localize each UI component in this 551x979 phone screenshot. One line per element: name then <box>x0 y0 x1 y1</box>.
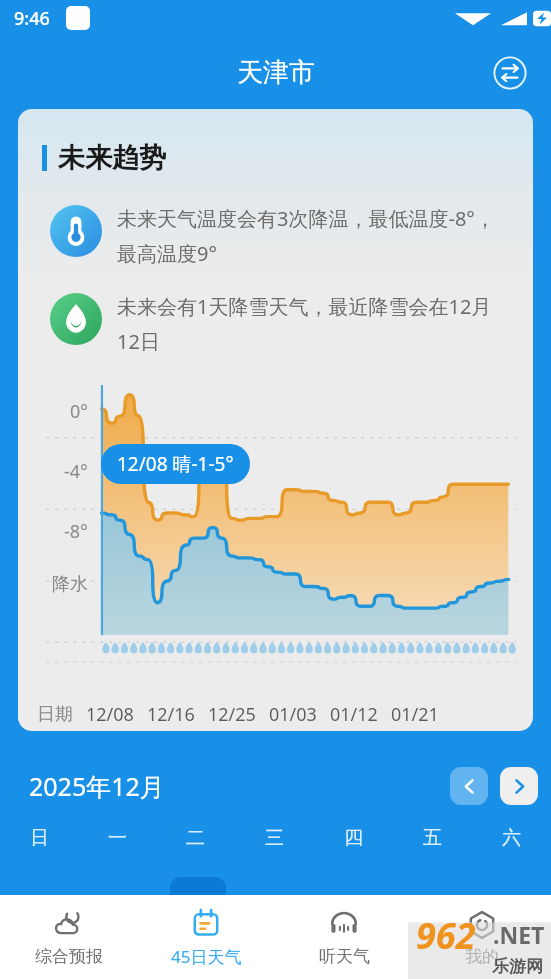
staticText: 12/16 <box>147 702 195 727</box>
staticText: 日期 <box>37 703 73 726</box>
staticText: 乐游网 <box>492 956 543 977</box>
staticText: 三 <box>265 826 284 850</box>
button[interactable]: 12/08 晴-1-5° <box>101 444 250 484</box>
staticText: 未来趋势 <box>58 141 166 175</box>
staticText: 9:46 <box>14 6 50 31</box>
staticText: -8° <box>64 519 88 541</box>
button[interactable]: Switch city <box>487 50 533 96</box>
staticText: 01/12 <box>330 702 378 727</box>
staticText: 12/25 <box>208 702 256 727</box>
staticText: 我的 <box>465 946 499 967</box>
button[interactable]: Next month <box>500 767 538 805</box>
button[interactable]: 综合预报 <box>0 895 137 979</box>
button[interactable]: 我的 <box>413 895 551 979</box>
staticText: 五 <box>423 826 442 850</box>
staticText: 962 <box>416 911 476 960</box>
staticText: 45日天气 <box>171 945 242 968</box>
staticText: 0° <box>70 399 88 421</box>
staticText: 天津市 <box>237 56 315 89</box>
button[interactable]: 听天气 <box>275 895 413 979</box>
staticText: 未来会有1天降雪天气，最近降雪会在12月12日 <box>117 293 513 355</box>
staticText: 降水 <box>52 573 88 595</box>
staticText: -4° <box>64 459 88 481</box>
staticText: 未来天气温度会有3次降温，最低温度-8°，最高温度9° <box>117 205 513 267</box>
staticText: 2025年12月 <box>29 769 165 803</box>
staticText: 01/03 <box>269 702 317 727</box>
staticText: 四 <box>344 826 363 850</box>
staticText: 听天气 <box>319 946 370 967</box>
staticText: 日 <box>30 826 49 850</box>
button[interactable]: Previous month <box>450 767 488 805</box>
staticText: .NET <box>493 919 545 950</box>
staticText: 二 <box>186 826 205 850</box>
staticText: 12/08 晴-1-5° <box>117 451 234 477</box>
staticText: 综合预报 <box>35 946 103 967</box>
staticText: 一 <box>108 826 127 850</box>
staticText: 01/21 <box>391 702 439 727</box>
staticText: 12/08 <box>86 702 134 727</box>
staticText: 六 <box>502 826 521 850</box>
button[interactable]: 45日天气 <box>137 895 275 979</box>
